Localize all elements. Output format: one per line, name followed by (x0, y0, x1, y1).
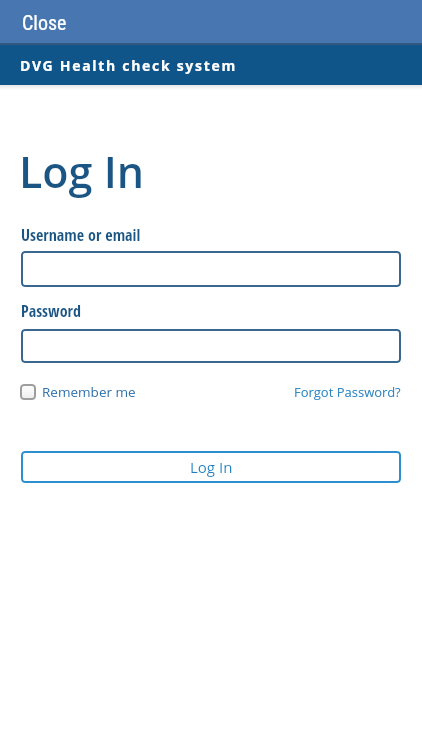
staticText: DVG Health check system (20, 56, 237, 75)
staticText: Log In (19, 142, 145, 201)
button[interactable]: Forgot Password? (294, 383, 401, 401)
button[interactable] (21, 251, 401, 287)
staticText: Username or email (21, 224, 141, 246)
staticText: Remember me (42, 383, 136, 401)
staticText: Forgot Password? (294, 383, 401, 401)
staticText: Close (22, 11, 67, 34)
button[interactable]: Close (0, 7, 75, 38)
staticText: Log In (190, 457, 233, 477)
button[interactable] (21, 329, 401, 363)
staticText: Password (21, 300, 81, 322)
button[interactable]: Remember me (21, 383, 136, 401)
button[interactable]: Log In (21, 451, 401, 483)
